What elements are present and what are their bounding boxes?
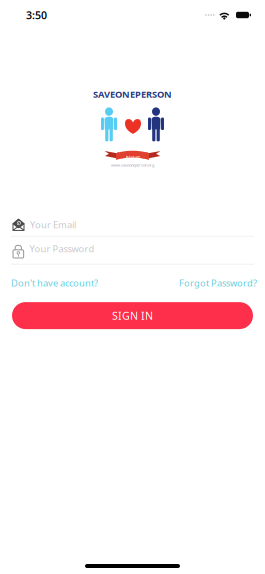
- staticText: SAVEONEPERSON: [93, 88, 172, 100]
- staticText: Don't have account?: [11, 277, 98, 289]
- staticText: Your Email: [30, 218, 76, 231]
- staticText: Forgot Password?: [179, 277, 257, 289]
- staticText: SIGN IN: [112, 308, 153, 323]
- button[interactable]: SIGN IN: [12, 302, 253, 329]
- staticText: 3:50: [26, 8, 47, 22]
- button[interactable]: Don't have account?: [11, 277, 98, 289]
- staticText: www.saveoneperson.org: [111, 162, 154, 168]
- button[interactable]: Forgot Password?: [179, 277, 257, 289]
- staticText: SAVE A LIFE: [125, 155, 139, 158]
- staticText: Your Password: [30, 242, 95, 255]
